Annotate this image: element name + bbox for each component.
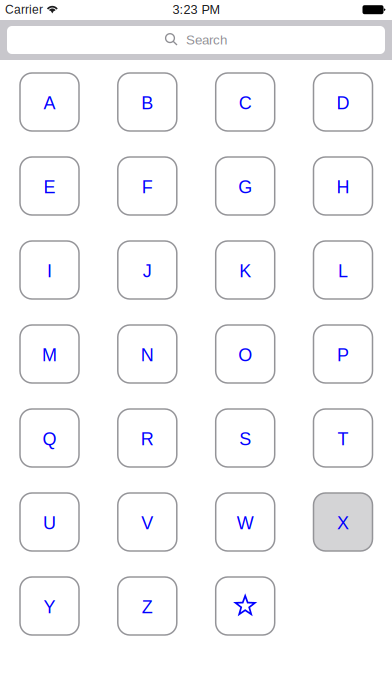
- button[interactable]: C: [216, 73, 275, 131]
- staticText: 3:23 PM: [172, 2, 220, 17]
- staticText: W: [237, 513, 254, 533]
- staticText: P: [337, 345, 349, 365]
- button[interactable]: J: [118, 241, 177, 299]
- button[interactable]: W: [216, 493, 275, 551]
- staticText: J: [143, 261, 152, 281]
- staticText: T: [337, 429, 348, 449]
- staticText: Q: [42, 429, 56, 449]
- staticText: C: [239, 93, 252, 113]
- staticText: M: [42, 345, 57, 365]
- staticText: Carrier: [5, 3, 43, 16]
- button[interactable]: O: [216, 325, 275, 383]
- staticText: Search: [186, 33, 227, 47]
- button[interactable]: Search: [7, 26, 385, 54]
- staticText: I: [47, 261, 52, 281]
- staticText: O: [238, 345, 252, 365]
- button[interactable]: G: [216, 157, 275, 215]
- button[interactable]: U: [20, 493, 79, 551]
- button[interactable]: L: [313, 241, 372, 299]
- button[interactable]: D: [313, 73, 372, 131]
- staticText: A: [43, 93, 55, 113]
- button[interactable]: H: [313, 157, 372, 215]
- button[interactable]: Q: [20, 409, 79, 467]
- staticText: V: [141, 513, 153, 533]
- staticText: B: [141, 93, 153, 113]
- staticText: G: [238, 177, 252, 197]
- staticText: U: [43, 513, 56, 533]
- staticText: H: [336, 177, 349, 197]
- staticText: X: [337, 513, 349, 533]
- staticText: R: [141, 429, 154, 449]
- staticText: D: [336, 93, 349, 113]
- button[interactable]: F: [118, 157, 177, 215]
- button[interactable]: I: [20, 241, 79, 299]
- button[interactable]: E: [20, 157, 79, 215]
- staticText: K: [239, 261, 251, 281]
- button[interactable]: T: [313, 409, 372, 467]
- staticText: N: [141, 345, 154, 365]
- button[interactable]: A: [20, 73, 79, 131]
- button[interactable]: Favorites: [216, 577, 275, 635]
- button[interactable]: K: [216, 241, 275, 299]
- button[interactable]: P: [313, 325, 372, 383]
- button[interactable]: Y: [20, 577, 79, 635]
- button[interactable]: N: [118, 325, 177, 383]
- button[interactable]: M: [20, 325, 79, 383]
- button[interactable]: Z: [118, 577, 177, 635]
- button[interactable]: S: [216, 409, 275, 467]
- button[interactable]: B: [118, 73, 177, 131]
- button[interactable]: R: [118, 409, 177, 467]
- staticText: S: [239, 429, 251, 449]
- button[interactable]: V: [118, 493, 177, 551]
- staticText: Y: [43, 597, 55, 617]
- staticText: L: [338, 261, 348, 281]
- staticText: Z: [142, 597, 153, 617]
- button[interactable]: X: [313, 493, 372, 551]
- staticText: E: [43, 177, 55, 197]
- staticText: F: [142, 177, 153, 197]
